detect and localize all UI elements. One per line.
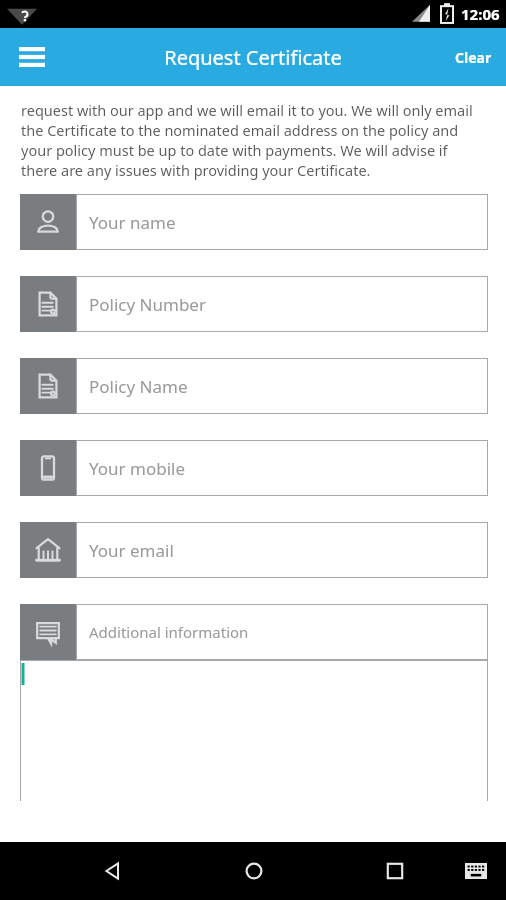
button[interactable]: Your name xyxy=(20,194,488,250)
button[interactable]: Change keyboard xyxy=(454,849,498,893)
button[interactable]: Recent apps xyxy=(371,847,419,895)
staticText: Clear xyxy=(455,48,492,67)
staticText: Additional information xyxy=(89,622,249,642)
button[interactable]: Policy Number xyxy=(20,276,488,332)
button[interactable]: Your mobile xyxy=(20,440,488,496)
button[interactable]: Open navigation menu xyxy=(10,35,54,79)
staticText: Policy Name xyxy=(89,375,188,398)
button[interactable]: Home xyxy=(230,847,278,895)
staticText: Your email xyxy=(89,539,174,562)
staticText: 12:06 xyxy=(461,4,500,24)
button[interactable]: Your email xyxy=(20,522,488,578)
button[interactable]: Policy Name xyxy=(20,358,488,414)
staticText: Request Certificate xyxy=(164,44,342,71)
staticText: Your name xyxy=(89,211,176,234)
button[interactable]: Back xyxy=(88,847,136,895)
staticText: Policy Number xyxy=(89,293,206,316)
staticText: Your mobile xyxy=(89,457,185,480)
button[interactable]: Clear xyxy=(441,28,506,86)
staticText: request with our app and we will email i… xyxy=(21,100,484,180)
button[interactable]: Additional information xyxy=(20,604,488,803)
